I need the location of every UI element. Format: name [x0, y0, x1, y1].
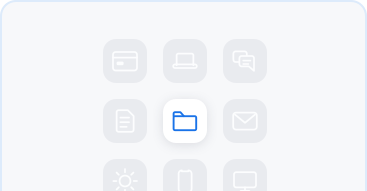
button[interactable]: Wallet [103, 39, 147, 83]
button[interactable]: Brightness [103, 159, 147, 191]
button[interactable]: Messages [223, 39, 267, 83]
button[interactable]: Notes [103, 99, 147, 143]
button[interactable]: iPhone [163, 159, 207, 191]
button[interactable]: Mac [163, 39, 207, 83]
button[interactable]: Files [163, 99, 207, 143]
button[interactable]: Mail [223, 99, 267, 143]
button[interactable]: Display [223, 159, 267, 191]
